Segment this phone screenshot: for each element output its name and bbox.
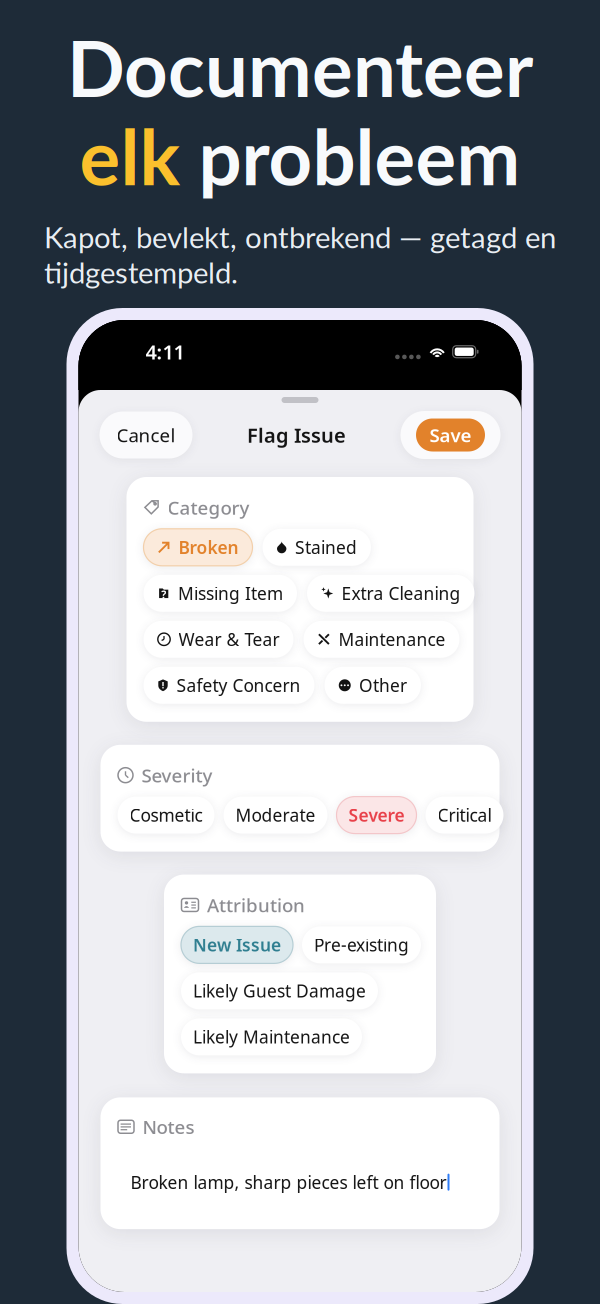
button[interactable]: New Issue [181, 926, 293, 963]
staticText: Cosmetic [129, 804, 202, 827]
button[interactable]: Broken [143, 529, 252, 566]
staticText: Likely Guest Damage [193, 979, 366, 1002]
button[interactable]: Wear & Tear [143, 621, 293, 658]
staticText: Maintenance [338, 628, 445, 651]
staticText: Severe [348, 804, 404, 827]
staticText: Extra Cleaning [341, 582, 460, 605]
staticText: Critical [437, 804, 491, 827]
button[interactable]: ? [143, 575, 297, 612]
button[interactable]: Likely Guest Damage [181, 972, 378, 1009]
staticText: ? [161, 587, 166, 601]
button[interactable]: Save [400, 411, 500, 459]
staticText: Flag Issue [247, 422, 346, 448]
staticText: New Issue [193, 933, 281, 956]
staticText: probleem [198, 110, 520, 201]
staticText: Kapot, bevlekt, ontbrekend — getagd en t… [44, 219, 556, 290]
staticText: Severity [141, 763, 212, 788]
button[interactable]: Cancel [99, 411, 192, 458]
staticText: Notes [142, 1114, 194, 1139]
staticText: Wear & Tear [178, 628, 279, 651]
button[interactable]: Other [324, 667, 421, 704]
staticText: Documenteer [67, 22, 533, 113]
staticText: Other [359, 674, 407, 697]
button[interactable]: Safety Concern [143, 667, 314, 704]
button[interactable]: Stained [262, 529, 371, 566]
staticText: Likely Maintenance [193, 1025, 350, 1048]
staticText: Save [429, 423, 471, 447]
staticText: Broken [178, 536, 238, 559]
staticText: Safety Concern [176, 674, 300, 697]
staticText: Moderate [235, 804, 315, 827]
staticText: Attribution [207, 893, 305, 917]
button[interactable]: Extra Cleaning [307, 575, 474, 612]
staticText: 4:11 [145, 338, 184, 365]
button[interactable]: Pre-existing [302, 926, 421, 963]
staticText: Category [167, 495, 249, 520]
button[interactable]: Moderate [223, 797, 327, 834]
button[interactable]: Severe [336, 797, 416, 834]
button[interactable]: Critical [425, 797, 503, 834]
staticText: Missing Item [178, 582, 283, 605]
staticText: Pre-existing [314, 933, 409, 956]
staticText: Stained [295, 536, 357, 559]
staticText: Cancel [116, 423, 175, 447]
staticText: elk [79, 110, 198, 201]
button[interactable]: Likely Maintenance [181, 1018, 362, 1055]
staticText: Broken lamp, sharp pieces left on floor [130, 1171, 446, 1194]
button[interactable]: Maintenance [303, 621, 459, 658]
button[interactable]: Cosmetic [117, 797, 214, 834]
